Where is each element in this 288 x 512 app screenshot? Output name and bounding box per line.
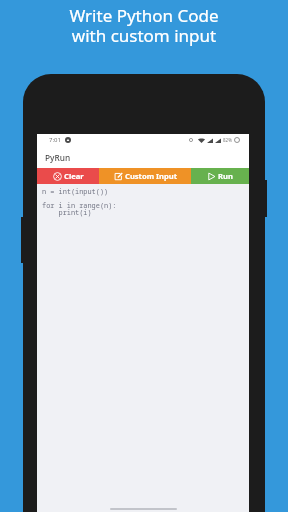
staticText: 82% xyxy=(223,137,232,143)
button[interactable]: Clear xyxy=(37,168,99,184)
staticText: 7:01 xyxy=(49,136,61,144)
staticText: Write Python Code with custom input xyxy=(0,4,288,47)
staticText: PyRun xyxy=(45,152,71,163)
staticText: Run xyxy=(218,171,233,181)
staticText: Clear xyxy=(64,171,84,181)
staticText: n = int(input()) for i in range(n): prin… xyxy=(42,187,117,217)
staticText: Custom Input xyxy=(125,171,177,181)
button[interactable]: Run xyxy=(191,168,249,184)
button[interactable]: Custom Input xyxy=(99,168,191,184)
